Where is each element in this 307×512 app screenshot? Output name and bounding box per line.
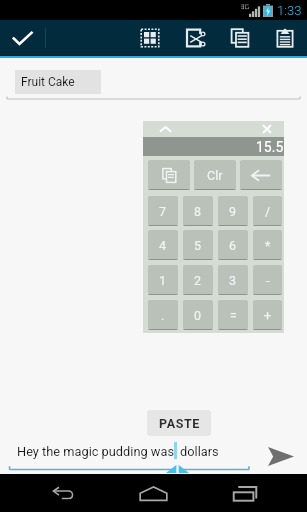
- staticText: 6: [229, 238, 237, 253]
- staticText: /: [265, 204, 271, 219]
- staticText: *: [265, 238, 271, 253]
- staticText: =: [230, 308, 237, 323]
- button[interactable]: 3: [218, 265, 248, 295]
- button[interactable]: Collapse: [153, 121, 177, 137]
- button[interactable]: 6: [218, 230, 248, 260]
- button[interactable]: Cut: [172, 20, 217, 55]
- staticText: 4: [159, 238, 167, 253]
- button[interactable]: 8: [183, 196, 213, 226]
- staticText: -: [266, 273, 270, 288]
- button[interactable]: 9: [218, 196, 248, 226]
- staticText: 15.5: [256, 139, 284, 155]
- button[interactable]: .: [148, 300, 178, 330]
- staticText: Fruit Cake: [21, 75, 75, 89]
- staticText: 9: [229, 204, 237, 219]
- button[interactable]: +: [253, 300, 282, 330]
- button[interactable]: Back: [17, 474, 108, 512]
- button[interactable]: =: [218, 300, 248, 330]
- button[interactable]: 0: [183, 300, 213, 330]
- button[interactable]: Table: [127, 20, 172, 55]
- staticText: 8: [194, 204, 202, 219]
- staticText: Clr: [207, 168, 223, 183]
- button[interactable]: -: [253, 265, 282, 295]
- button[interactable]: Copy: [148, 160, 190, 190]
- staticText: dollars: [180, 444, 219, 459]
- button[interactable]: Fruit Cake: [15, 70, 101, 94]
- staticText: 3: [229, 273, 237, 288]
- button[interactable]: Recent apps: [199, 474, 290, 512]
- button[interactable]: /: [253, 196, 282, 226]
- button[interactable]: 1: [148, 265, 178, 295]
- button[interactable]: Clr: [194, 160, 236, 190]
- button[interactable]: Backspace: [240, 160, 282, 190]
- staticText: 0: [194, 308, 202, 323]
- button[interactable]: Home: [108, 474, 199, 512]
- button[interactable]: 4: [148, 230, 178, 260]
- staticText: +: [264, 308, 272, 323]
- button[interactable]: Close: [257, 121, 277, 137]
- button[interactable]: Hey the magic pudding was: [0, 438, 307, 474]
- staticText: PASTE: [159, 416, 200, 431]
- button[interactable]: Send: [259, 438, 303, 474]
- staticText: .: [161, 308, 165, 323]
- button[interactable]: *: [253, 230, 282, 260]
- button[interactable]: 5: [183, 230, 213, 260]
- staticText: 5: [194, 238, 202, 253]
- staticText: Hey the magic pudding was: [17, 444, 175, 459]
- staticText: 1:33: [277, 3, 302, 18]
- button[interactable]: Done: [0, 20, 45, 55]
- staticText: 2: [194, 273, 202, 288]
- button[interactable]: Copy: [217, 20, 262, 55]
- staticText: 1: [159, 273, 167, 288]
- button[interactable]: Paste: [262, 20, 307, 55]
- button[interactable]: 2: [183, 265, 213, 295]
- button[interactable]: PASTE: [147, 410, 211, 436]
- staticText: 7: [159, 204, 167, 219]
- button[interactable]: 7: [148, 196, 178, 226]
